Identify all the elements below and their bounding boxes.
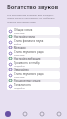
staticText: Стиль звукового ряда xyxy=(14,72,44,76)
staticText: Эквалайзер xyxy=(14,68,29,71)
staticText: Выбор xyxy=(14,43,22,46)
staticText: Это приложение поможет вам находить новы… xyxy=(7,13,60,24)
staticText: Громкость и тембр xyxy=(14,61,40,65)
staticText: Описание xyxy=(14,54,25,57)
staticText: Стиль физики и звука xyxy=(14,39,44,43)
staticText: Описание xyxy=(14,32,25,35)
button[interactable]: Тональность xyxy=(7,82,60,90)
staticText: Настройка вибрации xyxy=(14,57,41,60)
button[interactable]: Настройка вибрации xyxy=(7,57,60,60)
button[interactable]: Стиль физики и звука xyxy=(7,38,60,46)
staticText: Общая схема xyxy=(14,28,33,32)
staticText: Подробно xyxy=(14,65,25,68)
button[interactable]: Nav 0 xyxy=(0,108,16,119)
staticText: Тональность xyxy=(14,83,32,87)
staticText: Стиль звукового ряда xyxy=(14,50,44,54)
button[interactable]: Nav 2 xyxy=(33,108,50,119)
button[interactable]: Настройки звука xyxy=(7,35,60,38)
staticText: Расширенные опции xyxy=(14,79,41,82)
button[interactable]: Эквалайзер xyxy=(7,68,60,71)
button[interactable]: Стиль звукового ряда xyxy=(7,49,60,57)
button[interactable]: Мелодия xyxy=(7,46,60,49)
button[interactable]: Nav 1 xyxy=(16,108,33,119)
staticText: Описание xyxy=(14,76,25,79)
button[interactable]: Nav 3 xyxy=(50,108,67,119)
staticText: Богатство звуков xyxy=(7,3,59,11)
staticText: Мелодия xyxy=(14,46,26,49)
button[interactable]: Расширенные опции xyxy=(7,79,60,82)
button[interactable]: Громкость и тембр xyxy=(7,60,60,68)
button[interactable]: Стиль звукового ряда xyxy=(7,71,60,79)
staticText: Настройки звука xyxy=(14,35,36,38)
button[interactable]: Общая схема xyxy=(7,27,60,35)
staticText: Подробно xyxy=(14,87,25,90)
